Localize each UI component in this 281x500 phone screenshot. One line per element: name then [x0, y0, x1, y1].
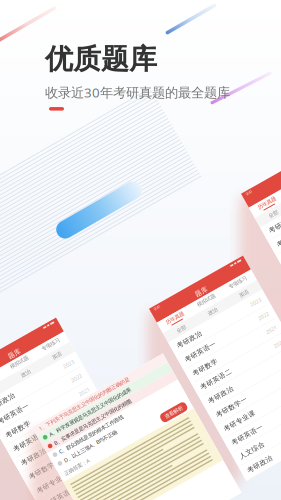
staticText: 考研数学	[9, 406, 37, 414]
staticText: 优质题库	[45, 42, 157, 76]
staticText: 考研英语一	[9, 390, 44, 398]
staticText: 考研数学	[196, 344, 224, 352]
staticText: 2014	[280, 456, 281, 463]
staticText: 考研英语二	[196, 360, 231, 368]
staticText: 查看解析	[182, 433, 202, 440]
staticText: 考研数学一	[9, 454, 44, 462]
staticText: 考研英语二	[9, 422, 44, 430]
staticText: 人文综合	[196, 439, 224, 447]
staticText: 模拟试题	[47, 349, 67, 355]
staticText: 2017	[93, 470, 105, 477]
staticText: 全部	[203, 300, 213, 307]
staticText: 2022	[93, 391, 105, 398]
staticText: 考研专业课	[196, 407, 231, 416]
staticText: 历年真题	[198, 287, 218, 293]
staticText: 考研英语一	[9, 485, 44, 494]
staticText: 考研政治	[196, 455, 224, 463]
staticText: B、实事求是是马克思主义中国化的精髓	[73, 401, 161, 408]
staticText: 考研英语一	[196, 328, 231, 336]
staticText: A、科学发展观是马克思主义中国化的成果	[73, 391, 166, 398]
staticText: C、群众路线是党的根本工作路线	[73, 411, 146, 418]
staticText: 考研政治	[9, 374, 37, 382]
staticText: 2021	[93, 406, 105, 414]
staticText: 正确答案：A	[67, 433, 95, 440]
staticText: 全部	[16, 362, 26, 369]
staticText: 1、下列关于马克思主义中国化的判断正确的是	[67, 381, 170, 389]
staticText: 2020	[93, 422, 105, 429]
staticText: 考研政治	[196, 312, 224, 320]
staticText: 题库	[50, 338, 64, 347]
staticText: 模拟试题	[234, 287, 254, 293]
staticText: 题库	[237, 276, 251, 285]
staticText: 考研政治	[196, 376, 224, 384]
staticText: 考研政治	[9, 438, 37, 446]
staticText: 考研英语一	[196, 423, 231, 432]
staticText: 2016	[93, 486, 105, 493]
staticText: 考研数学一	[196, 392, 231, 400]
staticText: 收录近30年考研真题的最全题库	[45, 83, 230, 101]
staticText: 2018	[93, 454, 105, 461]
staticText: 历年真题	[11, 349, 31, 355]
staticText: 考研专业课	[9, 469, 44, 478]
staticText: D、以上三项A、B均不正确	[73, 421, 133, 428]
staticText: 2021	[280, 344, 281, 352]
staticText: 2019	[93, 438, 105, 445]
